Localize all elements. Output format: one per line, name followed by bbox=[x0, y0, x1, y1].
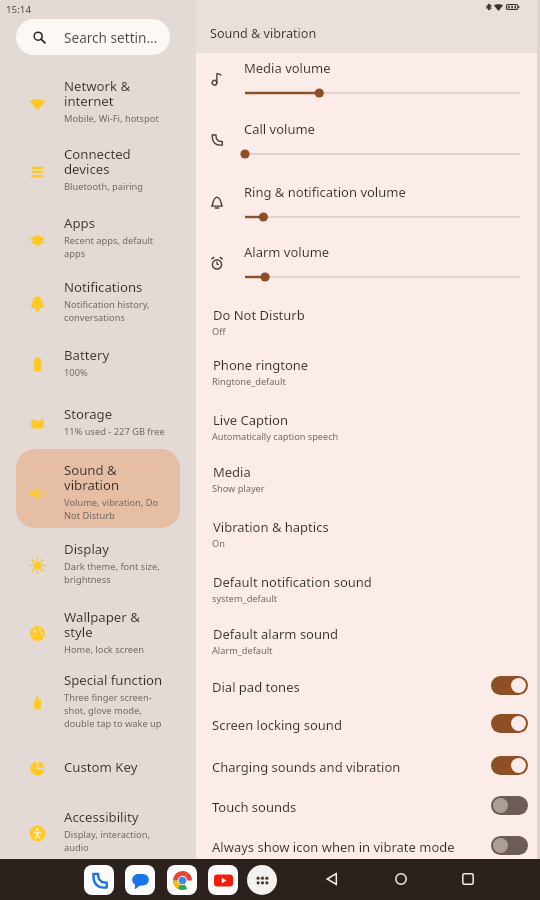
staticText: Vibration & haptics bbox=[213, 518, 329, 536]
button[interactable]: YouTube bbox=[208, 865, 238, 895]
staticText: Automatically caption speech bbox=[212, 430, 339, 443]
button[interactable]: Phone ringtone bbox=[196, 356, 540, 406]
staticText: Touch sounds bbox=[212, 798, 297, 816]
button[interactable]: Screen locking sound bbox=[196, 704, 540, 743]
staticText: Alarm volume bbox=[244, 243, 330, 261]
staticText: Home, lock screen bbox=[64, 643, 145, 656]
button[interactable]: Wallpaper & style bbox=[16, 595, 180, 668]
staticText: Mobile, Wi-Fi, hotspot bbox=[64, 112, 159, 125]
button[interactable]: Media bbox=[196, 463, 540, 513]
staticText: Default notification sound bbox=[213, 573, 372, 591]
button[interactable]: Dial pad tones bbox=[196, 666, 540, 705]
staticText: 100% bbox=[64, 366, 88, 379]
button[interactable]: Search settin… bbox=[16, 19, 170, 55]
staticText: Storage bbox=[64, 405, 113, 423]
button[interactable]: All apps bbox=[247, 865, 277, 895]
button[interactable]: Chrome bbox=[167, 865, 197, 895]
button[interactable]: Apps bbox=[16, 205, 180, 269]
staticText: Special function bbox=[64, 671, 163, 689]
staticText: Volume, vibration, Do Not Disturb bbox=[64, 496, 159, 522]
button[interactable]: Do Not Disturb bbox=[196, 306, 540, 356]
button[interactable]: Back bbox=[315, 862, 349, 896]
staticText: Ring & notification volume bbox=[244, 183, 406, 201]
staticText: Display, interaction, audio bbox=[64, 828, 150, 854]
staticText: Sound & vibration bbox=[210, 25, 317, 42]
button[interactable]: Live Caption bbox=[196, 411, 540, 461]
button[interactable]: Special function bbox=[16, 668, 180, 732]
button[interactable]: Custom Key bbox=[16, 732, 180, 801]
button[interactable]: Recents bbox=[451, 862, 485, 896]
button[interactable]: Default alarm sound bbox=[196, 625, 540, 675]
button[interactable]: Messages bbox=[125, 865, 155, 895]
button[interactable]: Sound & vibration bbox=[16, 452, 180, 531]
staticText: 15:14 bbox=[6, 3, 32, 16]
staticText: Media volume bbox=[244, 59, 331, 77]
staticText: Charging sounds and vibration bbox=[212, 758, 401, 776]
button[interactable]: Display bbox=[16, 531, 180, 595]
staticText: Search settin… bbox=[64, 28, 158, 47]
staticText: Show player bbox=[212, 482, 265, 495]
staticText: Notifications bbox=[64, 278, 143, 296]
staticText: Apps bbox=[64, 214, 95, 232]
button[interactable]: Alarm volume bbox=[196, 243, 540, 301]
staticText: Call volume bbox=[244, 120, 315, 138]
staticText: Battery bbox=[64, 346, 110, 364]
staticText: Screen locking sound bbox=[212, 716, 342, 734]
staticText: On bbox=[212, 537, 225, 550]
button[interactable]: Default notification sound bbox=[196, 573, 540, 623]
button[interactable]: Notifications bbox=[16, 269, 180, 333]
staticText: Default alarm sound bbox=[213, 625, 339, 643]
button[interactable]: Ring & notification volume bbox=[196, 183, 540, 241]
staticText: Notification history, conversations bbox=[64, 298, 150, 324]
staticText: Recent apps, default apps bbox=[64, 234, 154, 260]
button[interactable]: Phone bbox=[84, 865, 114, 895]
staticText: Live Caption bbox=[213, 411, 288, 429]
staticText: Do Not Disturb bbox=[213, 306, 305, 324]
staticText: Alarm_default bbox=[212, 644, 273, 657]
staticText: Off bbox=[212, 325, 226, 338]
staticText: Ringtone_default bbox=[212, 375, 286, 388]
button[interactable]: Charging sounds and vibration bbox=[196, 746, 540, 785]
button[interactable]: Call volume bbox=[196, 120, 540, 178]
staticText: Accessibility bbox=[64, 808, 139, 826]
button[interactable]: Home bbox=[384, 862, 418, 896]
staticText: Dark theme, font size, brightness bbox=[64, 560, 160, 586]
staticText: Bluetooth, pairing bbox=[64, 180, 144, 193]
button[interactable]: Battery bbox=[16, 333, 180, 391]
staticText: Wallpaper & style bbox=[64, 608, 140, 641]
button[interactable]: Connected devices bbox=[16, 133, 180, 205]
staticText: Three finger screen- shot, glove mode, d… bbox=[64, 691, 162, 730]
staticText: Dial pad tones bbox=[212, 678, 300, 696]
button[interactable]: Storage bbox=[16, 391, 180, 452]
button[interactable]: Always show icon when in vibrate mode bbox=[196, 826, 540, 865]
button[interactable]: Touch sounds bbox=[196, 786, 540, 825]
staticText: Sound & vibration bbox=[64, 461, 120, 494]
button[interactable]: Vibration & haptics bbox=[196, 518, 540, 568]
staticText: Media bbox=[213, 463, 251, 481]
staticText: Always show icon when in vibrate mode bbox=[212, 838, 455, 856]
staticText: Network & internet bbox=[64, 77, 131, 110]
staticText: Custom Key bbox=[64, 758, 138, 776]
button[interactable]: Media volume bbox=[196, 59, 540, 117]
staticText: system_default bbox=[212, 592, 278, 605]
staticText: Display bbox=[64, 540, 109, 558]
button[interactable]: Network & internet bbox=[16, 69, 180, 133]
button[interactable]: Accessibility bbox=[16, 801, 180, 861]
staticText: Connected devices bbox=[64, 145, 131, 178]
staticText: Phone ringtone bbox=[213, 356, 309, 374]
staticText: 11% used - 227 GB free bbox=[64, 425, 165, 438]
